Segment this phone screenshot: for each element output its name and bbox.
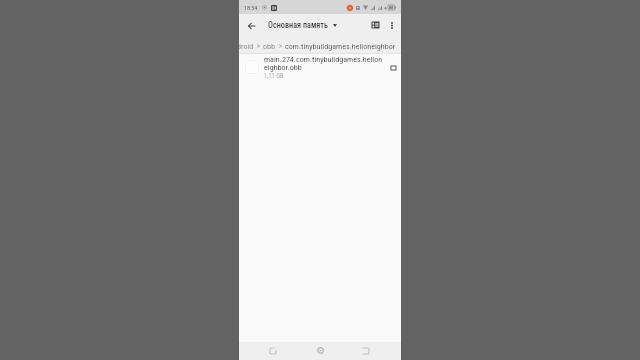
button[interactable]: com.tinybuildgames.helloneighbor (285, 41, 396, 50)
button[interactable]: Switch view (368, 18, 382, 32)
button[interactable]: Back (245, 19, 258, 32)
staticText: Основная память (268, 20, 328, 30)
button[interactable]: main.274.com.tinybuildgames.helloneighbo… (239, 54, 401, 92)
button[interactable]: More options (385, 19, 398, 32)
button[interactable]: droid (239, 41, 254, 50)
button[interactable]: Home (308, 342, 332, 359)
button[interactable]: Back (261, 342, 285, 359)
button[interactable]: Recent apps (354, 342, 378, 359)
button[interactable]: Основная память (268, 20, 337, 30)
button[interactable]: Select file (387, 62, 399, 74)
staticText: main.274.com.tinybuildgames.helloneighbo… (264, 54, 385, 72)
staticText: 1,11 GB (264, 72, 284, 80)
staticText: 18:54 (244, 4, 258, 11)
button[interactable]: obb (263, 41, 276, 50)
